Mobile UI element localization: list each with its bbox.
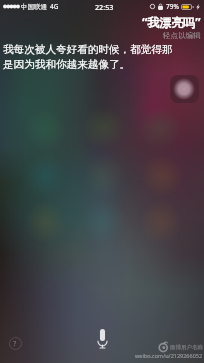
button[interactable]: Help bbox=[6, 334, 24, 352]
staticText: ? bbox=[13, 338, 17, 348]
staticText: 轻点以编辑 bbox=[163, 31, 201, 40]
staticText: weibo.com/u/2129266052 bbox=[135, 352, 203, 359]
staticText: 4G bbox=[50, 2, 59, 11]
staticText: 22:53 bbox=[95, 2, 114, 12]
staticText: 79% bbox=[166, 2, 179, 11]
staticText: “我漂亮吗” bbox=[142, 14, 201, 30]
staticText: 微博用户名称 bbox=[170, 344, 203, 351]
staticText: 我每次被人夸好看的时候，都觉得那是因为我和你越来越像了。 bbox=[3, 43, 174, 71]
button[interactable]: “我漂亮吗” bbox=[0, 14, 201, 40]
button[interactable]: Microphone bbox=[84, 321, 120, 357]
staticText: 中国联通 bbox=[21, 3, 47, 11]
